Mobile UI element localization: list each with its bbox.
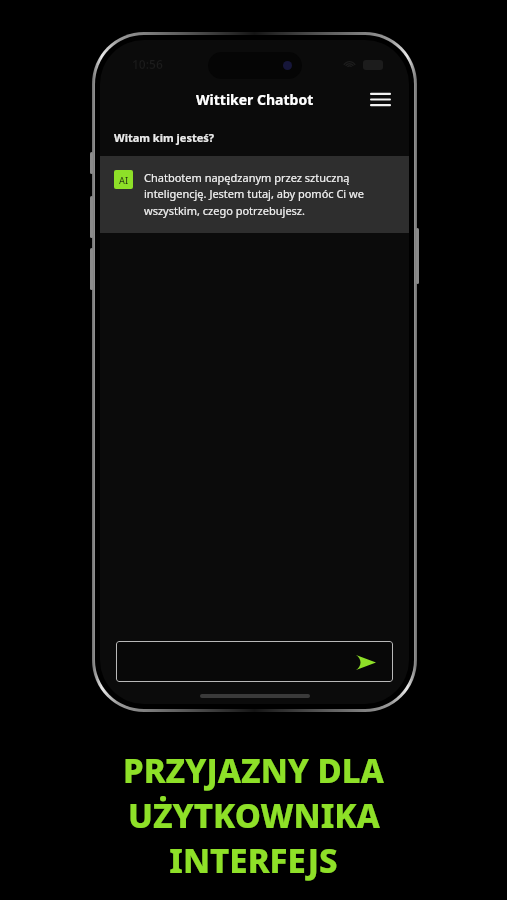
staticText: Chatbotem napędzanym przez sztuczną inte… (144, 170, 395, 219)
staticText: 10:56 (132, 56, 163, 72)
staticText: PRZYJAZNY DLA (123, 748, 384, 793)
button[interactable]: Send (351, 647, 381, 677)
button[interactable]: AI (100, 156, 409, 233)
staticText: Witam kim jesteś? (114, 130, 215, 145)
button[interactable]: Send (116, 641, 393, 682)
staticText: Wittiker Chatbot (196, 90, 314, 109)
staticText: AI (119, 174, 129, 186)
staticText: UŻYTKOWNIKA (128, 793, 380, 838)
button[interactable]: Menu (365, 84, 395, 114)
staticText: INTERFEJS (169, 838, 338, 883)
